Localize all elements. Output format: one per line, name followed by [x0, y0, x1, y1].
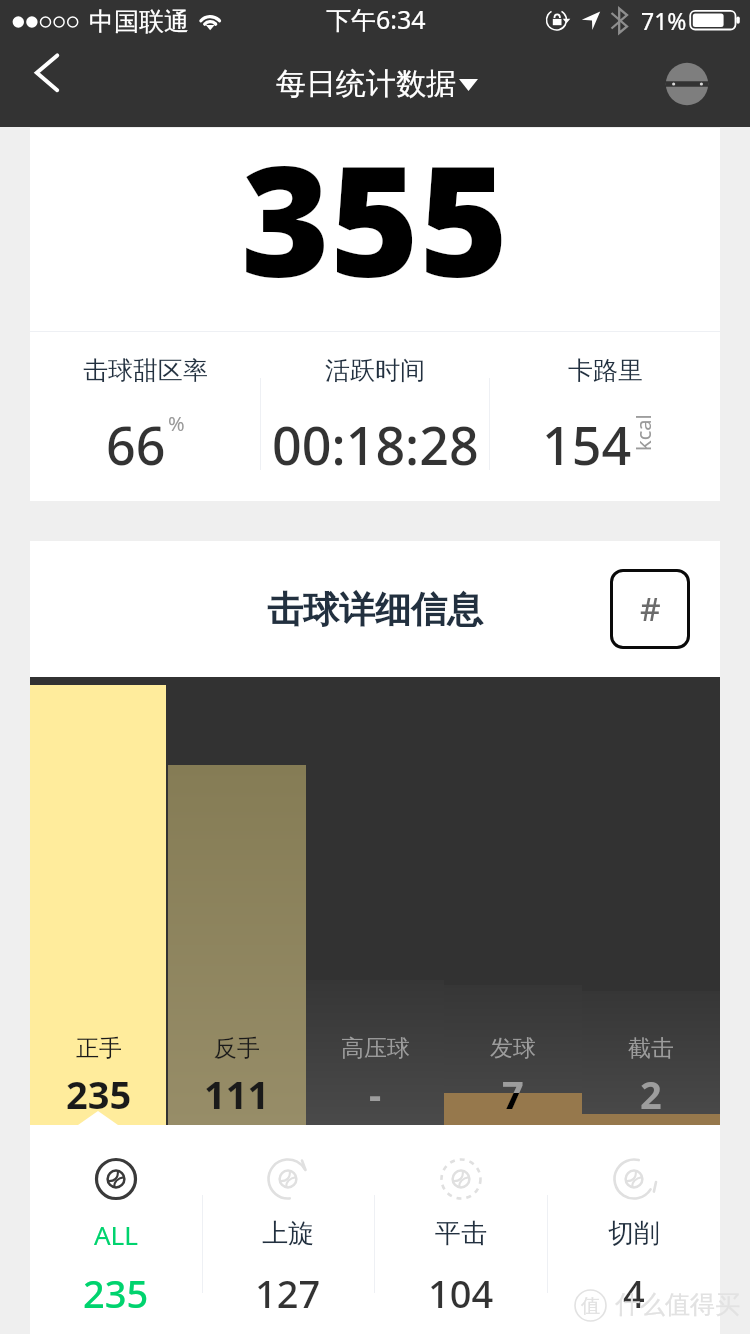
button[interactable]: 每日统计数据 [276, 65, 478, 103]
staticText: 71% [641, 5, 687, 36]
staticText: 上旋 [262, 1217, 314, 1250]
staticText: 00:18:28 [272, 409, 479, 480]
staticText: 127 [255, 1267, 321, 1319]
staticText: 切削 [608, 1217, 660, 1250]
button[interactable]: 平击 [374, 1125, 547, 1334]
staticText: 111 [204, 1068, 270, 1120]
staticText: 355 [241, 114, 509, 317]
staticText: 值 [581, 1294, 600, 1318]
staticText: 卡路里 [568, 355, 643, 386]
staticText: ALL [94, 1217, 138, 1252]
button[interactable]: Hashtag filter [610, 569, 690, 649]
staticText: 什么值得买 [615, 1289, 740, 1320]
button[interactable]: Profile [665, 48, 729, 127]
staticText: 每日统计数据 [276, 65, 456, 103]
staticText: kcal [630, 414, 657, 451]
staticText: 击球甜区率 [83, 355, 208, 386]
button[interactable]: ALL [30, 1125, 202, 1334]
staticText: 下午6:34 [326, 2, 426, 36]
staticText: 235 [83, 1267, 149, 1319]
staticText: 7 [502, 1068, 524, 1120]
staticText: 平击 [435, 1217, 487, 1250]
staticText: - [369, 1068, 382, 1120]
staticText: 154 [542, 409, 632, 480]
staticText: 发球 [490, 1034, 536, 1063]
staticText: 7 [502, 1093, 524, 1120]
staticText: 104 [428, 1267, 494, 1319]
staticText: 截击 [628, 1034, 674, 1063]
staticText: % [168, 410, 185, 437]
staticText: 66 [106, 409, 166, 480]
button[interactable]: 切削 [547, 1125, 720, 1334]
staticText: 活跃时间 [325, 355, 425, 386]
staticText: 4 [623, 1267, 645, 1319]
staticText: 高压球 [341, 1034, 410, 1063]
staticText: 2 [640, 1068, 662, 1120]
staticText: 击球详细信息 [267, 587, 483, 632]
staticText: 中国联通 [89, 6, 189, 37]
staticText: 正手 [76, 1034, 122, 1063]
button[interactable]: Back [10, 48, 80, 127]
staticText: 反手 [214, 1034, 260, 1063]
staticText: # [640, 587, 661, 631]
button[interactable]: 上旋 [202, 1125, 374, 1334]
staticText: 235 [66, 1068, 132, 1120]
